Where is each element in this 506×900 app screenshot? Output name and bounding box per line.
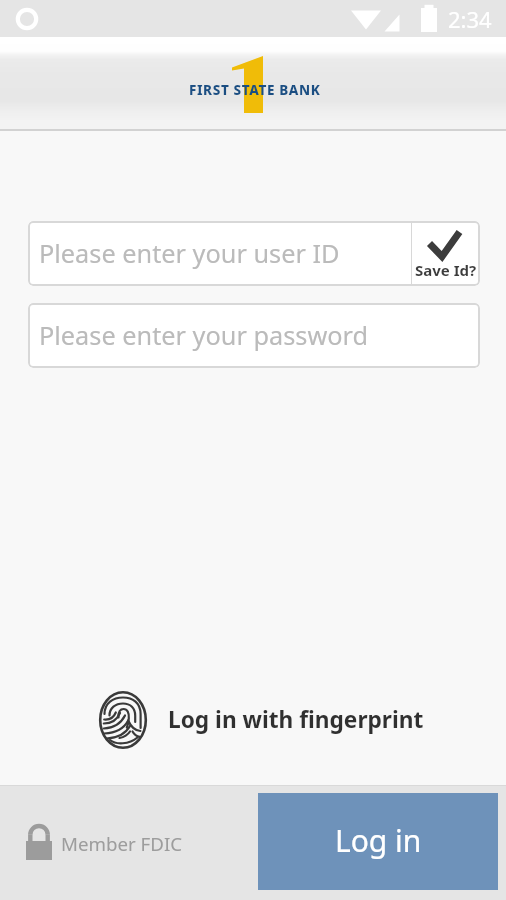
staticText: Please enter your password bbox=[39, 318, 369, 352]
button[interactable]: Log in with fingerprint bbox=[98, 690, 424, 751]
staticText: Please enter your user ID bbox=[39, 236, 340, 270]
button[interactable]: Save Id bbox=[412, 221, 480, 286]
button[interactable]: Member FDIC bbox=[22, 815, 183, 861]
staticText: Log in bbox=[335, 820, 422, 861]
staticText: 2:34 bbox=[448, 4, 492, 34]
button[interactable]: Please enter your password bbox=[28, 303, 480, 368]
staticText: FIRST STATE BANK bbox=[189, 81, 321, 99]
staticText: Log in with fingerprint bbox=[168, 704, 424, 735]
button[interactable]: Please enter your user ID bbox=[28, 221, 411, 286]
staticText: Save Id? bbox=[415, 260, 477, 280]
button[interactable]: Log in bbox=[258, 793, 498, 890]
staticText: Member FDIC bbox=[61, 831, 183, 856]
